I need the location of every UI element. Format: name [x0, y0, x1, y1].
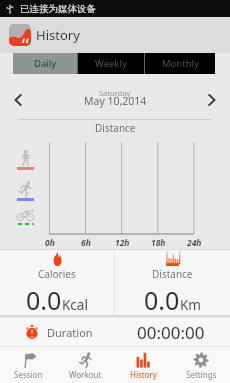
staticText: Duration — [47, 325, 93, 340]
staticText: Workout — [69, 369, 102, 380]
staticText: Weekly — [95, 57, 127, 70]
staticText: 00:00:00 — [137, 321, 205, 344]
staticText: 0.0 — [144, 283, 180, 315]
staticText: History — [36, 26, 80, 44]
staticText: Saturday — [99, 88, 131, 98]
staticText: Distance — [152, 267, 193, 281]
button[interactable]: Session — [0, 347, 57, 383]
staticText: 12h — [115, 237, 130, 249]
staticText: Distance — [95, 121, 136, 135]
button[interactable]: Calories — [0, 250, 114, 315]
button[interactable]: History — [114, 347, 172, 383]
button[interactable]: Settings — [172, 347, 230, 383]
staticText: Monthly — [162, 57, 199, 70]
button[interactable]: Weekly — [78, 53, 144, 74]
button[interactable]: Duration — [0, 318, 230, 346]
staticText: 18h — [151, 237, 166, 249]
button[interactable]: Daily — [13, 53, 77, 74]
button[interactable]: Distance — [115, 250, 230, 315]
staticText: Settings — [186, 369, 217, 380]
staticText: 0.0 — [26, 283, 62, 315]
button[interactable]: Previous day — [0, 88, 36, 112]
staticText: Calories — [38, 267, 76, 281]
staticText: Km — [180, 296, 201, 314]
button[interactable]: Monthly — [145, 53, 215, 74]
button[interactable]: Next day — [194, 88, 230, 112]
staticText: Daily — [34, 57, 57, 70]
staticText: 6h — [81, 237, 91, 249]
staticText: 24h — [187, 237, 202, 249]
staticText: Kcal — [62, 296, 88, 314]
staticText: History — [130, 369, 157, 380]
staticText: 0h — [45, 237, 55, 249]
button[interactable]: Workout — [57, 347, 114, 383]
staticText: Session — [14, 369, 43, 380]
staticText: 已连接为媒体设备 — [20, 3, 96, 15]
staticText: May 10,2014 — [84, 94, 147, 108]
